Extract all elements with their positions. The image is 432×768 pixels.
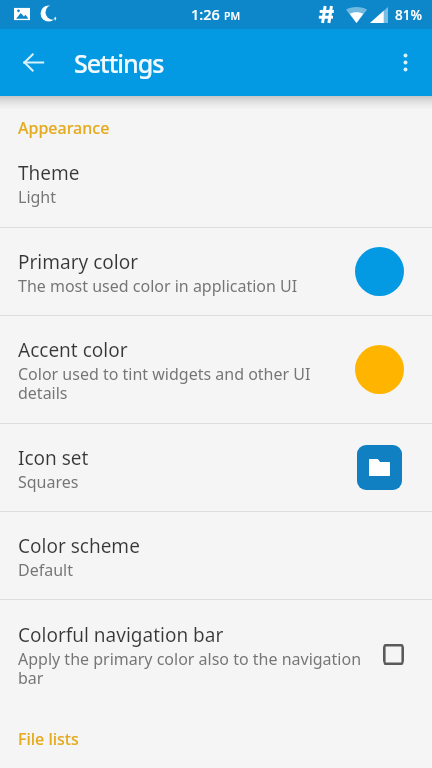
staticText: Settings bbox=[74, 46, 164, 80]
staticText: Colorful navigation bar bbox=[18, 622, 224, 648]
staticText: Color scheme bbox=[18, 533, 140, 559]
button[interactable]: Icon set preview bbox=[357, 445, 402, 490]
staticText: File lists bbox=[18, 728, 79, 750]
staticText: Squares bbox=[18, 471, 79, 493]
staticText: 81% bbox=[395, 6, 422, 24]
staticText: Primary color bbox=[18, 249, 139, 275]
button[interactable]: Theme bbox=[0, 139, 432, 227]
button[interactable]: Navigate up bbox=[11, 40, 56, 85]
button[interactable]: Primary color bbox=[0, 228, 432, 315]
staticText: Color used to tint widgets and other UI … bbox=[18, 363, 354, 403]
button[interactable]: Primary color swatch bbox=[355, 247, 404, 296]
button[interactable]: More options bbox=[383, 40, 428, 85]
button[interactable]: Color scheme bbox=[0, 512, 432, 599]
button[interactable]: Accent color bbox=[0, 316, 432, 423]
button[interactable]: Colorful navigation bar bbox=[0, 600, 432, 708]
staticText: Light bbox=[18, 186, 57, 208]
staticText: 1:26 bbox=[191, 4, 220, 24]
staticText: Icon set bbox=[18, 445, 89, 471]
staticText: Theme bbox=[18, 160, 80, 186]
button[interactable]: Colorful navigation bar checkbox bbox=[383, 637, 404, 671]
staticText: Default bbox=[18, 559, 73, 581]
staticText: PM bbox=[224, 9, 241, 23]
staticText: Appearance bbox=[18, 117, 110, 139]
button[interactable]: Accent color swatch bbox=[355, 345, 404, 394]
staticText: The most used color in application UI bbox=[18, 275, 298, 297]
staticText: Apply the primary color also to the navi… bbox=[18, 648, 374, 688]
button[interactable]: Icon set bbox=[0, 424, 432, 511]
staticText: Accent color bbox=[18, 337, 128, 363]
